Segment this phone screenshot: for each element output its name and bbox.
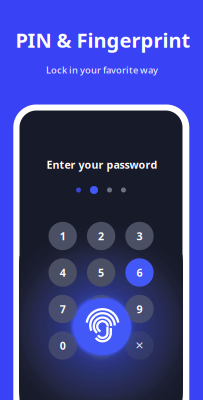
button[interactable]: 9 [125, 295, 154, 323]
staticText: Enter your password [46, 157, 157, 172]
button[interactable]: 3 [125, 222, 154, 250]
staticText: 2 [98, 229, 104, 243]
button[interactable]: 0 [48, 331, 77, 360]
button[interactable]: 2 [87, 222, 115, 250]
staticText: 9 [136, 302, 142, 316]
staticText: 8 [98, 302, 104, 316]
button[interactable]: 7 [48, 295, 77, 323]
staticText: 0 [60, 338, 66, 353]
button[interactable]: Scan fingerprint [74, 298, 131, 355]
button[interactable]: 1 [48, 222, 77, 250]
staticText: 7 [60, 302, 66, 316]
staticText: 6 [136, 265, 142, 280]
button[interactable]: ✕ [125, 331, 154, 360]
staticText: Lock in your favorite way [46, 64, 158, 76]
button[interactable]: 8 [87, 295, 115, 323]
button[interactable]: 6 [125, 258, 154, 287]
button[interactable] [87, 331, 115, 360]
staticText: 3 [136, 229, 142, 243]
staticText: 1 [60, 229, 66, 243]
button[interactable]: 5 [87, 258, 115, 287]
button[interactable]: 4 [48, 258, 77, 287]
staticText: ✕ [135, 339, 144, 351]
staticText: 5 [98, 265, 104, 280]
staticText: 4 [60, 265, 66, 280]
staticText: PIN & Fingerprint [15, 27, 190, 53]
